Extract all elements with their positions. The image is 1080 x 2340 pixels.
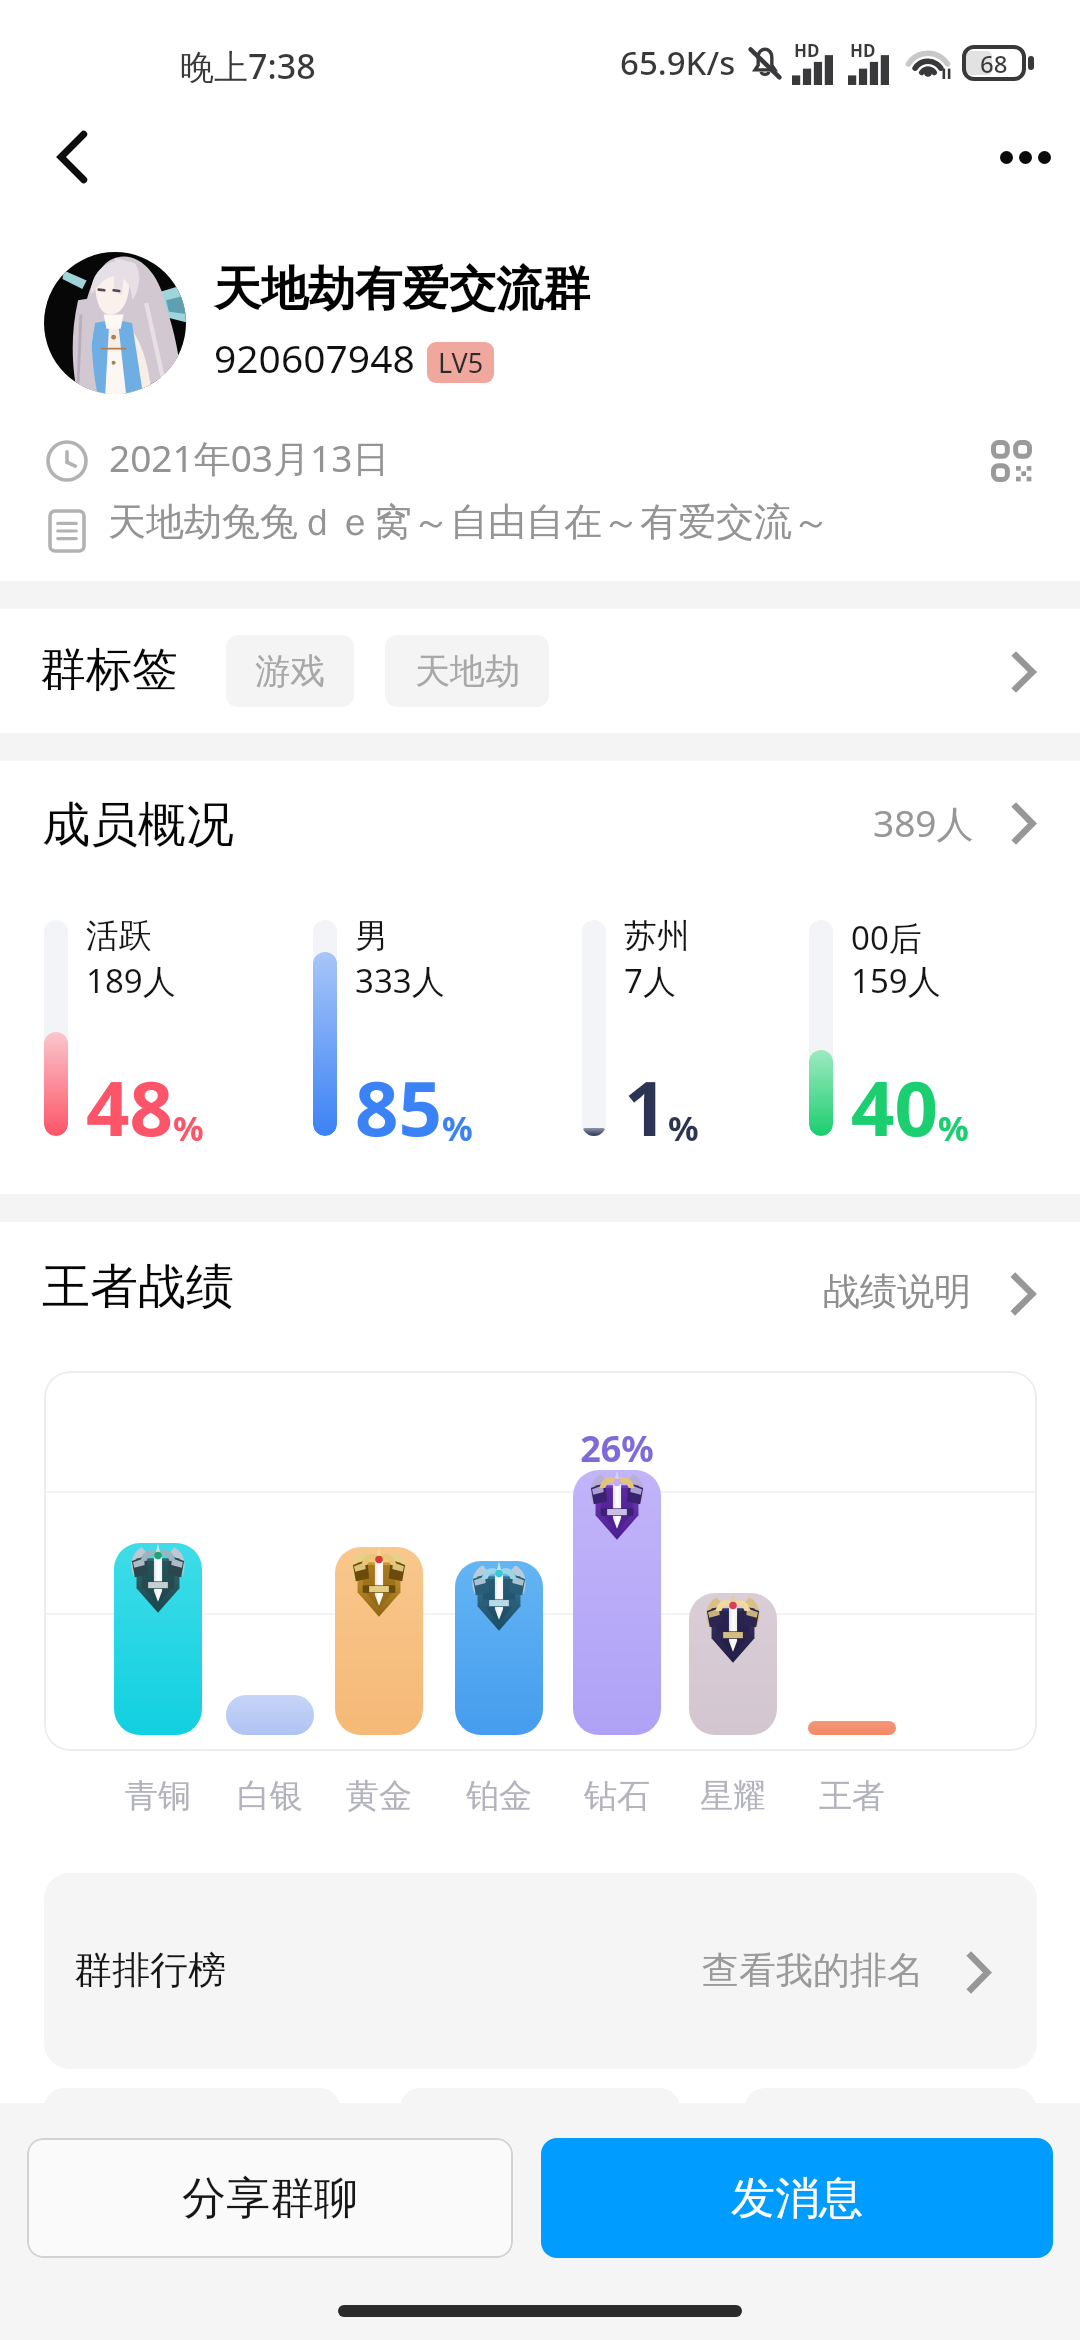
staticText: 白银 [237,1775,303,1817]
staticText: 黄金 [346,1775,412,1817]
staticText: 65.9K/s [620,40,736,85]
staticText: 星耀 [700,1775,766,1817]
staticText: 天地劫有爱交流群 [214,260,590,319]
staticText: % [442,1105,473,1151]
staticText: 群标签 [40,641,178,699]
staticText: 男 [355,915,388,957]
staticText: 48 [86,1055,173,1159]
staticText: 00后 [851,915,922,960]
staticText: 成员概况 [42,795,234,855]
button[interactable]: 成员概况 [0,761,1080,871]
button[interactable]: 群标签 [0,609,1080,733]
staticText: 68 [980,47,1008,80]
staticText: HD [794,39,820,62]
staticText: 7人 [624,958,676,1003]
staticText: 钻石 [584,1775,650,1817]
staticText: 活跃 [86,915,152,957]
button[interactable]: More options [977,100,1073,214]
staticText: 分享群聊 [182,2171,358,2226]
staticText: 发消息 [731,2171,863,2226]
staticText: 王者战绩 [42,1257,234,1317]
staticText: % [668,1105,699,1151]
staticText: LV5 [438,344,484,381]
staticText: 天地劫 [415,649,520,693]
staticText: 389人 [873,797,974,848]
staticText: 159人 [851,958,941,1003]
button[interactable]: 发消息 [541,2138,1053,2258]
staticText: 晚上7:38 [180,43,316,89]
staticText: 920607948 [214,331,415,384]
staticText: % [938,1105,969,1151]
staticText: 189人 [86,958,176,1003]
staticText: 85 [355,1055,442,1159]
button[interactable]: 分享群聊 [27,2138,513,2258]
button[interactable]: Back [34,100,114,214]
button[interactable]: 天地劫有爱交流群 [0,246,1080,402]
staticText: 铂金 [466,1775,532,1817]
staticText: 天地劫兔兔ｄｅ窝～自由自在～有爱交流～ [108,498,830,546]
staticText: 青铜 [125,1775,191,1817]
staticText: 群排行榜 [74,1946,226,1994]
staticText: 1 [624,1055,668,1159]
staticText: 40 [851,1055,938,1159]
button[interactable]: 群排行榜 [44,1873,1037,2069]
staticText: 战绩说明 [823,1268,971,1315]
staticText: HD [850,39,876,62]
staticText: 333人 [355,958,445,1003]
button[interactable]: 王者战绩 [0,1222,1080,1332]
staticText: 游戏 [255,649,325,693]
button[interactable]: Group QR code [973,423,1049,499]
staticText: % [173,1105,204,1151]
staticText: 王者 [819,1775,885,1817]
staticText: 2021年03月13日 [109,432,390,483]
staticText: 查看我的排名 [702,1947,924,1994]
staticText: 26% [580,1424,654,1473]
staticText: 苏州 [624,915,690,957]
